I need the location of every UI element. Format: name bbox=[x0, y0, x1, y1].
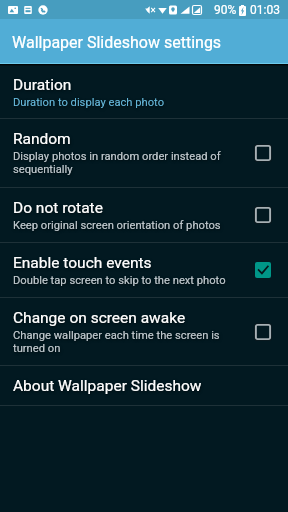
button[interactable]: Unchecked bbox=[254, 323, 272, 341]
button[interactable]: Duration bbox=[0, 66, 288, 118]
button[interactable]: Checked bbox=[254, 261, 272, 279]
staticText: Duration bbox=[13, 76, 72, 94]
button[interactable]: Do not rotate bbox=[0, 188, 288, 242]
button[interactable]: Unchecked bbox=[254, 206, 272, 224]
staticText: About Wallpaper Slideshow bbox=[13, 377, 202, 395]
button[interactable]: Random bbox=[0, 119, 288, 187]
staticText: Display photos in random order instead o… bbox=[13, 150, 246, 176]
staticText: Change on screen awake bbox=[13, 309, 186, 327]
staticText: Wallpaper Slideshow settings bbox=[12, 33, 222, 52]
button[interactable]: Change on screen awake bbox=[0, 298, 288, 365]
staticText: 01:03 bbox=[250, 3, 280, 17]
staticText: Enable touch events bbox=[13, 254, 152, 272]
staticText: Do not rotate bbox=[13, 199, 103, 217]
button[interactable]: About Wallpaper Slideshow bbox=[0, 366, 288, 405]
staticText: Keep original screen orientation of phot… bbox=[13, 219, 221, 232]
staticText: Duration to display each photo bbox=[13, 96, 165, 109]
staticText: 90% bbox=[214, 3, 237, 17]
staticText: Random bbox=[13, 130, 71, 148]
button[interactable]: Unchecked bbox=[254, 144, 272, 162]
staticText: Double tap screen to skip to the next ph… bbox=[13, 274, 226, 287]
button[interactable]: Enable touch events bbox=[0, 243, 288, 297]
staticText: Change wallpaper each time the screen is… bbox=[13, 329, 246, 355]
